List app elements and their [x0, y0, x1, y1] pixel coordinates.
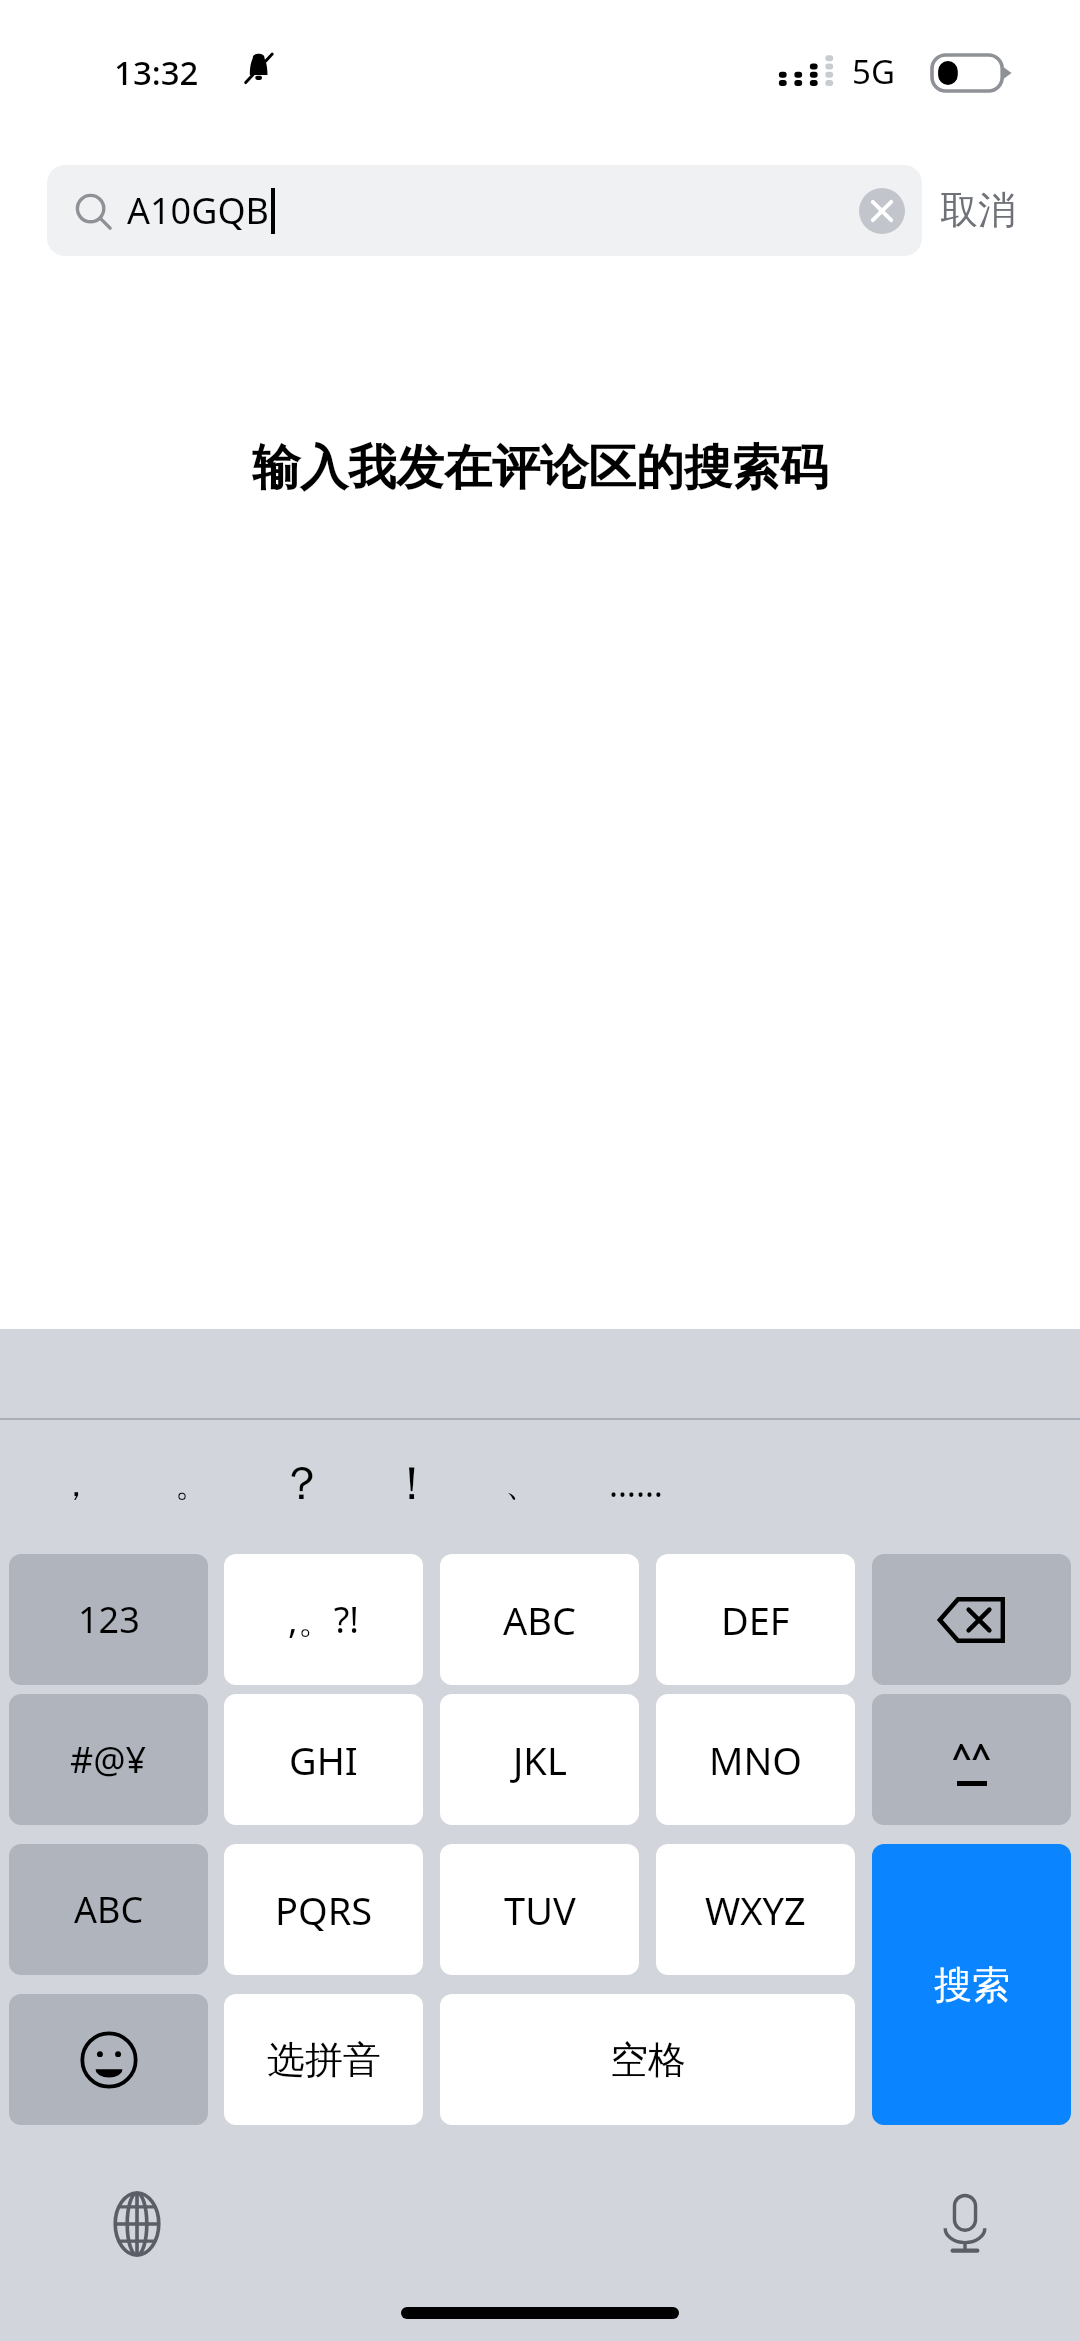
button[interactable]: 取消: [940, 172, 1060, 248]
button[interactable]: PQRS: [224, 1844, 423, 1975]
staticText: ！: [389, 1455, 435, 1513]
staticText: WXYZ: [705, 1884, 806, 1936]
button[interactable]: WXYZ: [656, 1844, 855, 1975]
button[interactable]: 空格: [440, 1994, 855, 2125]
staticText: ^^: [952, 1733, 991, 1779]
button[interactable]: ABC: [440, 1554, 639, 1685]
button[interactable]: Voice input: [910, 2169, 1020, 2279]
button[interactable]: 、: [482, 1449, 562, 1519]
staticText: 。: [175, 1463, 209, 1506]
staticText: ……: [609, 1461, 663, 1507]
button[interactable]: Kaomoji: [872, 1694, 1071, 1825]
button[interactable]: Clear text: [850, 179, 914, 243]
staticText: ,。?!: [288, 1595, 359, 1644]
button[interactable]: DEF: [656, 1554, 855, 1685]
staticText: 输入我发在评论区的搜索码: [0, 438, 1080, 498]
button[interactable]: MNO: [656, 1694, 855, 1825]
button[interactable]: JKL: [440, 1694, 639, 1825]
staticText: 空格: [610, 2036, 686, 2084]
staticText: 13:32: [114, 50, 199, 95]
staticText: 、: [505, 1463, 539, 1506]
staticText: 5G: [852, 49, 895, 94]
staticText: DEF: [721, 1594, 790, 1646]
button[interactable]: Emoji: [9, 1994, 208, 2125]
button[interactable]: ，: [36, 1449, 116, 1519]
button[interactable]: A10GQB: [47, 165, 922, 256]
staticText: 选拼音: [267, 2036, 381, 2084]
staticText: PQRS: [275, 1884, 373, 1936]
button[interactable]: 搜索: [872, 1844, 1071, 2125]
button[interactable]: #@¥: [9, 1694, 208, 1825]
staticText: ABC: [74, 1885, 144, 1934]
staticText: ABC: [503, 1594, 576, 1646]
staticText: GHI: [289, 1734, 358, 1786]
staticText: ，: [59, 1463, 93, 1506]
staticText: MNO: [709, 1734, 803, 1786]
button[interactable]: ABC: [9, 1844, 208, 1975]
button[interactable]: ,。?!: [224, 1554, 423, 1685]
staticText: A10GQB: [127, 186, 269, 235]
button[interactable]: 选拼音: [224, 1994, 423, 2125]
staticText: TUV: [504, 1884, 576, 1936]
button[interactable]: 。: [152, 1449, 232, 1519]
button[interactable]: GHI: [224, 1694, 423, 1825]
button[interactable]: ……: [596, 1449, 676, 1519]
button[interactable]: Switch language: [82, 2169, 192, 2279]
button[interactable]: TUV: [440, 1844, 639, 1975]
staticText: #@¥: [70, 1735, 147, 1784]
button[interactable]: Backspace: [872, 1554, 1071, 1685]
staticText: JKL: [513, 1734, 567, 1786]
staticText: 123: [78, 1595, 140, 1644]
staticText: ？: [279, 1455, 325, 1513]
staticText: 取消: [940, 186, 1016, 234]
button[interactable]: 123: [9, 1554, 208, 1685]
staticText: 搜索: [934, 1961, 1010, 2009]
button[interactable]: ？: [262, 1449, 342, 1519]
button[interactable]: ！: [372, 1449, 452, 1519]
